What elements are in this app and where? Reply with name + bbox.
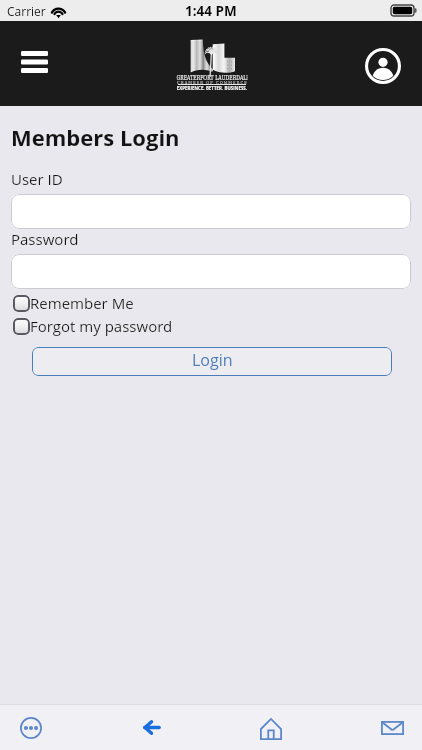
staticText: CHAMBER OF COMMERCE: [177, 80, 248, 85]
staticText: Members Login: [11, 122, 180, 152]
staticText: 1:44 PM: [185, 2, 237, 20]
button[interactable]: Forgot my password: [13, 316, 173, 336]
button[interactable]: Account: [361, 44, 405, 88]
button[interactable]: Back: [125, 705, 177, 750]
button[interactable]: Home: [245, 705, 297, 750]
button[interactable]: More: [5, 705, 57, 750]
button[interactable]: [11, 254, 411, 289]
button[interactable]: Menu: [12, 40, 56, 84]
staticText: Login: [192, 349, 233, 371]
staticText: GREATERFORT LAUDERDALE: [176, 74, 247, 81]
staticText: Forgot my password: [30, 316, 173, 336]
staticText: EXPERIENCE. BETTER. BUSINESS.: [177, 84, 247, 91]
button[interactable]: [11, 194, 411, 229]
button[interactable]: Login: [32, 347, 392, 376]
staticText: Remember Me: [30, 293, 134, 313]
button[interactable]: Remember Me: [13, 293, 134, 313]
staticText: Carrier: [7, 3, 46, 19]
staticText: User ID: [11, 169, 63, 189]
button[interactable]: Mail: [366, 705, 418, 750]
staticText: Password: [11, 229, 79, 249]
